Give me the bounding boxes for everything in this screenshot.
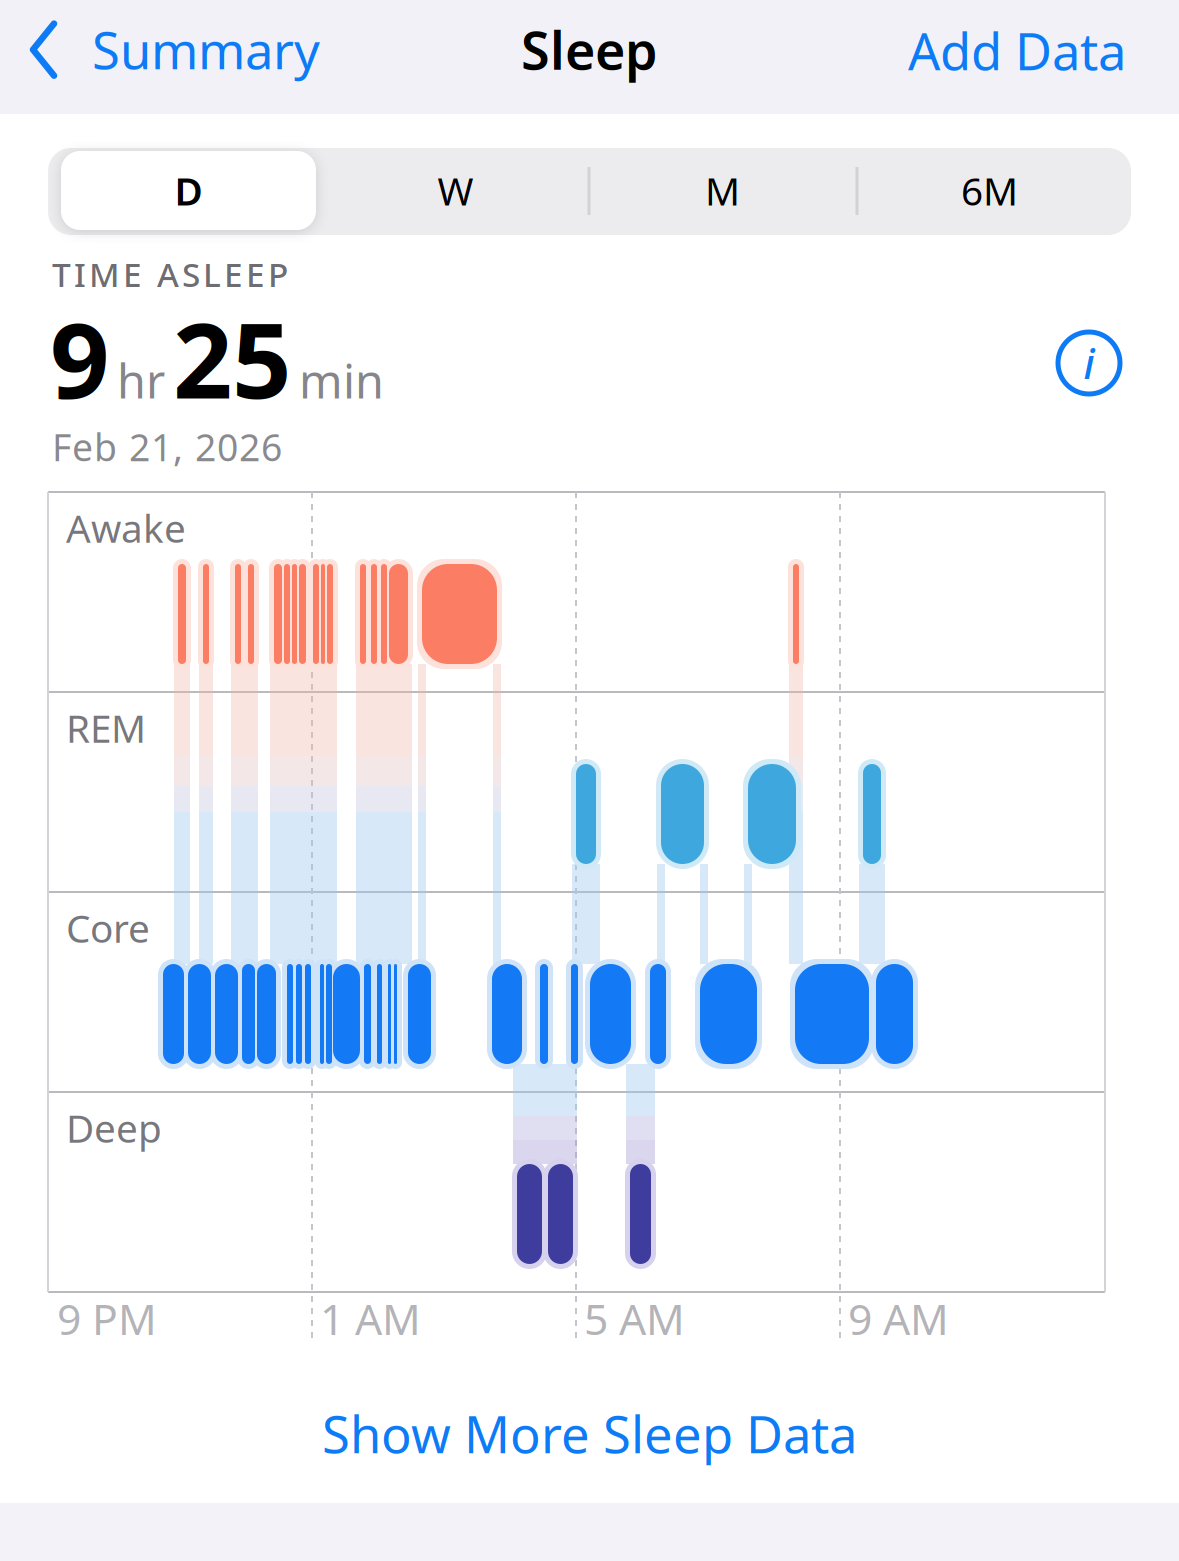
staticText: Feb 21, 2026	[52, 422, 282, 472]
staticText: Deep	[66, 1102, 162, 1153]
staticText: D	[174, 165, 202, 216]
staticText: 9	[50, 289, 109, 427]
staticText: REM	[66, 702, 146, 753]
staticText: Show More Sleep Data	[322, 1400, 857, 1467]
staticText: W	[437, 165, 473, 216]
button[interactable]: Summary	[30, 16, 320, 83]
staticText: 1 AM	[320, 1290, 421, 1347]
staticText: Core	[66, 902, 150, 953]
staticText: TIME ASLEEP	[52, 252, 288, 296]
staticText: Sleep	[521, 15, 658, 84]
button[interactable]: M	[589, 149, 856, 232]
staticText: hr	[117, 349, 165, 411]
staticText: i	[1083, 336, 1094, 390]
staticText: 9 AM	[848, 1290, 949, 1347]
staticText: M	[705, 165, 740, 216]
button[interactable]: Show More Sleep Data	[322, 1400, 857, 1467]
staticText: 9 PM	[57, 1290, 157, 1347]
staticText: min	[299, 349, 384, 411]
button[interactable]: D	[55, 149, 322, 232]
staticText: Awake	[66, 502, 186, 553]
button[interactable]: Add Data	[908, 17, 1126, 84]
staticText: 6M	[961, 165, 1018, 216]
button[interactable]: 6M	[856, 149, 1123, 232]
button[interactable]: W	[322, 149, 589, 232]
button[interactable]: About Time Asleep	[1054, 328, 1124, 398]
staticText: Add Data	[908, 17, 1126, 84]
staticText: 5 AM	[584, 1290, 685, 1347]
staticText: Summary	[92, 16, 320, 83]
staticText: 25	[173, 289, 291, 427]
